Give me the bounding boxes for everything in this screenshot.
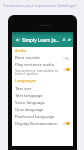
staticText: Text size	[15, 86, 32, 92]
staticText: Voice language	[15, 100, 45, 106]
button[interactable]: Display Romanization	[12, 120, 73, 127]
button[interactable]: On	[62, 121, 70, 126]
button[interactable]: On	[62, 67, 70, 72]
staticText: Display Romanization	[15, 121, 58, 127]
button[interactable]: Quiz language	[12, 106, 73, 113]
button[interactable]: Play sentence audio	[12, 62, 73, 76]
staticText: Flashcard Language	[15, 114, 55, 120]
button[interactable]: Voice language	[12, 99, 73, 106]
staticText: Customize your experience (Settings)	[3, 3, 76, 9]
staticText: Audio	[15, 48, 27, 53]
button[interactable]: Back	[14, 36, 22, 44]
button[interactable]: More options	[68, 36, 71, 44]
staticText: Simply Learn Ja...	[22, 37, 60, 43]
staticText: Boot sounds	[15, 55, 40, 61]
staticText: Text language	[15, 93, 43, 99]
staticText: Tap sentence translation to hear it spok…	[15, 68, 62, 76]
button[interactable]: Flashcard Language	[12, 113, 73, 120]
button[interactable]: Boot sounds	[12, 54, 73, 62]
staticText: Quiz language	[15, 107, 44, 113]
staticText: Play sentence audio	[15, 62, 55, 68]
button[interactable]: Off	[62, 56, 70, 61]
button[interactable]: Text size	[12, 85, 73, 92]
button[interactable]: Account	[60, 36, 68, 44]
button[interactable]: Text language	[12, 92, 73, 99]
staticText: Languages	[15, 78, 36, 83]
